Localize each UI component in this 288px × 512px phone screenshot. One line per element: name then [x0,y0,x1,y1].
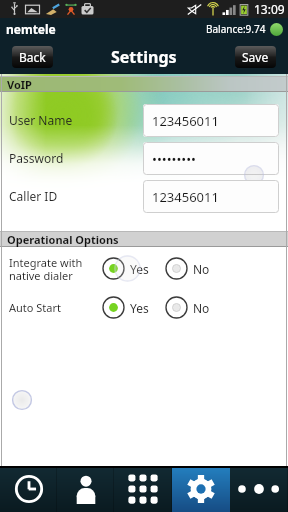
button[interactable]: Recent [0,466,57,512]
staticText: ••••••••• [152,150,196,168]
staticText: Settings [111,46,177,68]
staticText: 123456011 [152,112,219,130]
button[interactable]: No [165,296,210,319]
staticText: Password [9,150,64,166]
staticText: Caller ID [9,188,58,204]
button[interactable]: Back [12,46,53,68]
button[interactable]: 123456011 [143,104,279,137]
staticText: Save [242,49,269,65]
staticText: No [193,261,210,277]
button[interactable]: Keypad [114,466,172,512]
button[interactable]: Settings [172,466,230,512]
staticText: 13:09 [254,1,285,17]
button[interactable]: ••••••••• [143,142,279,175]
button[interactable]: Save [235,46,276,68]
button[interactable]: 123456011 [143,180,279,213]
button[interactable]: More [230,466,288,512]
staticText: User Name [9,112,73,128]
button[interactable]: No [165,257,210,280]
staticText: No [193,300,210,316]
staticText: Integrate with native dialer [9,255,83,283]
button[interactable]: Yes [102,296,149,319]
staticText: Back [19,49,46,65]
staticText: 123456011 [152,188,219,206]
staticText: Balance:9.74 [206,22,266,36]
staticText: nemtele [6,21,56,37]
button[interactable]: Contacts [57,466,114,512]
staticText: Yes [130,300,149,316]
button[interactable]: Yes [102,257,149,280]
staticText: VoIP [7,77,32,92]
staticText: Yes [130,261,149,277]
staticText: Operational Options [7,232,119,247]
staticText: Auto Start [9,300,62,315]
